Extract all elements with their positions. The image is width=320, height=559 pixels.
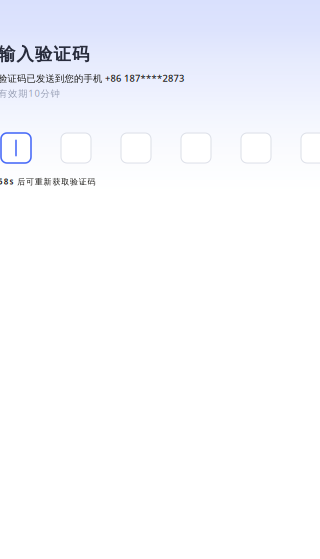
button[interactable]: Verification code digit <box>1 133 31 163</box>
staticText: 输入验证码 <box>0 43 89 65</box>
staticText: 58s 后可重新获取验证码 <box>0 176 96 187</box>
button[interactable]: Verification code digit <box>181 133 211 163</box>
button[interactable]: 58s 后可重新获取验证码 <box>0 176 96 187</box>
staticText: 验证码已发送到您的手机 +86 187****2873 <box>0 72 184 84</box>
staticText: 有效期10分钟 <box>0 87 60 99</box>
button[interactable]: Verification code digit <box>61 133 91 163</box>
button[interactable]: Verification code digit <box>121 133 151 163</box>
button[interactable]: Verification code digit <box>241 133 271 163</box>
button[interactable]: Verification code digit <box>301 133 320 163</box>
